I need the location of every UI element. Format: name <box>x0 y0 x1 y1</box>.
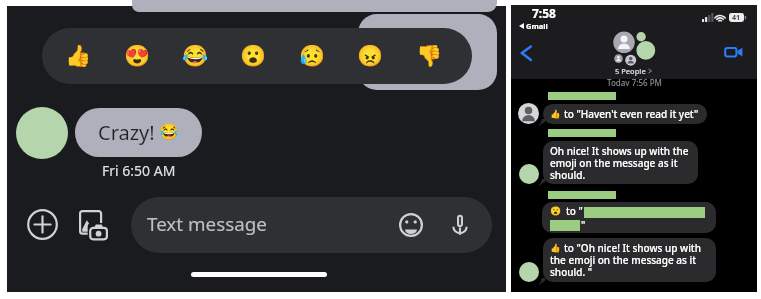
staticText: Today 7:56 PM <box>607 77 662 86</box>
staticText: the emoji on the message as it should. " <box>550 253 697 279</box>
button[interactable]: 👍 <box>543 238 716 282</box>
staticText: Fri 6:50 AM <box>102 161 176 180</box>
staticText: 👍 <box>65 44 92 69</box>
staticText: Crazy! <box>98 119 155 146</box>
staticText: 😂 <box>159 122 179 141</box>
button[interactable]: Insert emoji <box>399 213 423 237</box>
staticText: 👍 <box>550 243 561 253</box>
staticText: 😮 <box>550 206 562 217</box>
button[interactable]: Gallery <box>79 210 108 241</box>
staticText: Oh nice! It shows up with the emoji on t… <box>550 144 693 182</box>
staticText: 👎 <box>416 44 443 69</box>
button[interactable]: React with emoji <box>60 28 97 84</box>
button[interactable]: Add attachment <box>27 209 58 240</box>
button[interactable]: Back <box>516 41 540 65</box>
staticText: 😮 <box>240 44 267 69</box>
staticText: " <box>581 218 586 232</box>
button[interactable]: React with emoji <box>411 28 448 84</box>
button[interactable]: 😮 <box>542 202 716 233</box>
staticText: 5 People <box>615 66 646 76</box>
staticText: 😍 <box>124 44 151 69</box>
button[interactable]: 5 People <box>615 66 652 76</box>
button[interactable]: React with emoji <box>352 28 389 84</box>
staticText: 👍 <box>550 109 561 119</box>
button[interactable]: Voice message <box>448 213 472 237</box>
staticText: Text message <box>147 211 267 237</box>
staticText: to " <box>566 204 583 218</box>
button[interactable]: 👍 <box>543 104 707 124</box>
button[interactable]: React with emoji <box>177 28 214 84</box>
button[interactable]: React with emoji <box>294 28 331 84</box>
button[interactable]: Text message <box>131 197 492 253</box>
button[interactable]: React with emoji <box>119 28 156 84</box>
staticText: 😠 <box>357 44 384 69</box>
staticText: Gmail <box>526 21 548 31</box>
button[interactable]: FaceTime video call <box>724 42 744 62</box>
button[interactable]: Oh nice! It shows up with the emoji on t… <box>543 141 698 184</box>
staticText: 😥 <box>299 44 326 69</box>
staticText: 7:58 <box>532 5 556 21</box>
staticText: 41 <box>732 13 741 23</box>
staticText: to "Oh nice! It shows up with <box>564 241 701 255</box>
button[interactable]: Gmail <box>519 21 548 31</box>
button[interactable]: React with emoji <box>235 28 272 84</box>
staticText: to "Haven't even read it yet" <box>564 107 699 121</box>
staticText: 😂 <box>182 44 209 69</box>
button[interactable]: 5 People group <box>611 29 659 73</box>
button[interactable]: Crazy! <box>75 108 202 157</box>
